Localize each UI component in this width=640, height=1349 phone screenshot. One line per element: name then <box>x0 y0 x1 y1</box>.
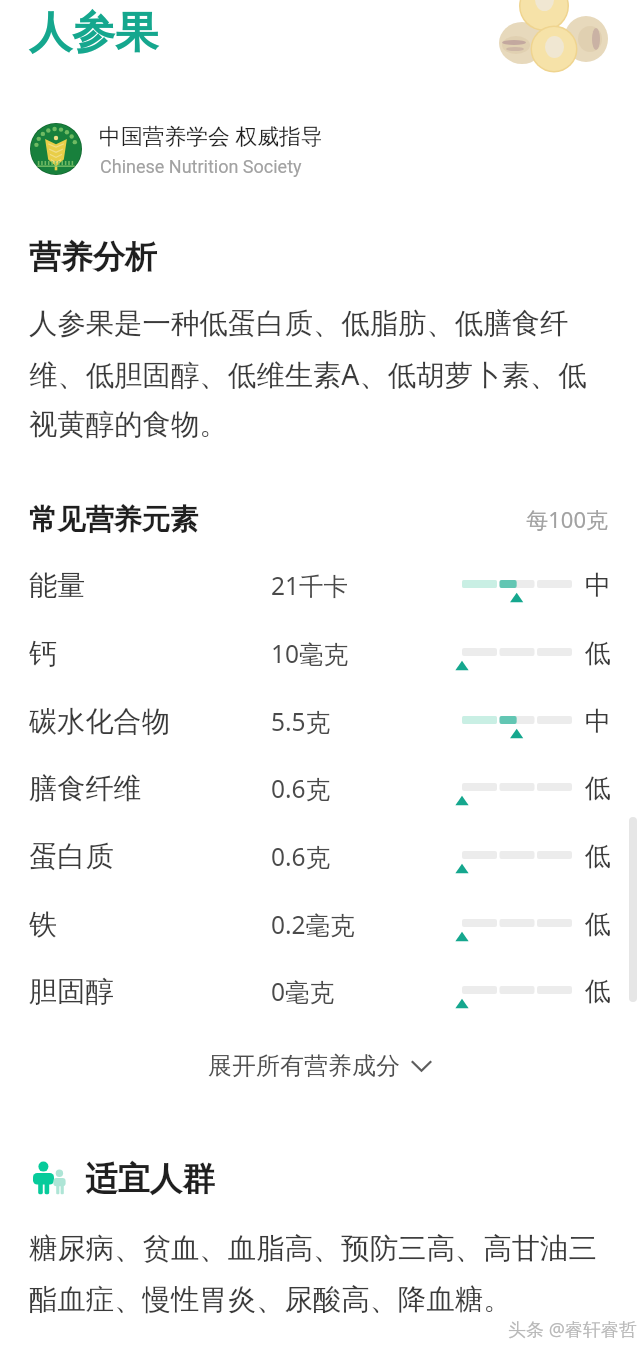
staticText: 中 <box>585 569 611 602</box>
staticText: 人参果是一种低蛋白质、低脂肪、低膳食纤维、低胆固醇、低维生素A、低胡萝卜素、低视… <box>29 306 599 442</box>
button[interactable]: 胆固醇 <box>0 958 640 1025</box>
button[interactable]: 能量 <box>0 552 640 619</box>
button[interactable]: 碳水化合物 <box>0 688 640 755</box>
staticText: 0.6克 <box>271 840 331 873</box>
staticText: 低 <box>585 840 611 873</box>
staticText: 低 <box>585 637 611 670</box>
staticText: 常见营养元素 <box>29 502 199 538</box>
button[interactable]: 钙 <box>0 620 640 687</box>
staticText: 低 <box>585 908 611 941</box>
staticText: 0.2毫克 <box>271 908 355 941</box>
staticText: 中国营养学会 权威指导 <box>99 121 323 151</box>
staticText: 中 <box>585 705 611 738</box>
staticText: 展开所有营养成分 <box>208 1051 400 1081</box>
staticText: 低 <box>585 772 611 805</box>
staticText: 5.5克 <box>271 705 331 738</box>
staticText: 碳水化合物 <box>29 704 170 740</box>
staticText: Chinese Nutrition Society <box>100 156 302 177</box>
staticText: 营养分析 <box>29 237 157 277</box>
staticText: 0.6克 <box>271 772 331 805</box>
staticText: 21千卡 <box>271 569 349 602</box>
staticText: 适宜人群 <box>85 1159 215 1200</box>
staticText: 蛋白质 <box>29 839 114 875</box>
staticText: 胆固醇 <box>29 974 114 1010</box>
staticText: 人参果 <box>29 6 158 60</box>
staticText: 低 <box>585 975 611 1008</box>
staticText: 能量 <box>29 568 86 604</box>
button[interactable]: 铁 <box>0 891 640 958</box>
staticText: 铁 <box>29 907 58 943</box>
button[interactable]: 展开所有营养成分 <box>0 1046 640 1086</box>
button[interactable]: 蛋白质 <box>0 823 640 890</box>
staticText: 0毫克 <box>271 975 335 1008</box>
staticText: 膳食纤维 <box>29 771 142 807</box>
staticText: 头条 @睿轩睿哲 <box>508 1317 637 1342</box>
staticText: 10毫克 <box>271 637 349 670</box>
staticText: 每100克 <box>450 504 608 534</box>
staticText: 钙 <box>29 636 58 672</box>
button[interactable]: 膳食纤维 <box>0 755 640 822</box>
staticText: 糖尿病、贫血、血脂高、预防三高、高甘油三酯血症、慢性胃炎、尿酸高、降血糖。 <box>29 1231 609 1318</box>
